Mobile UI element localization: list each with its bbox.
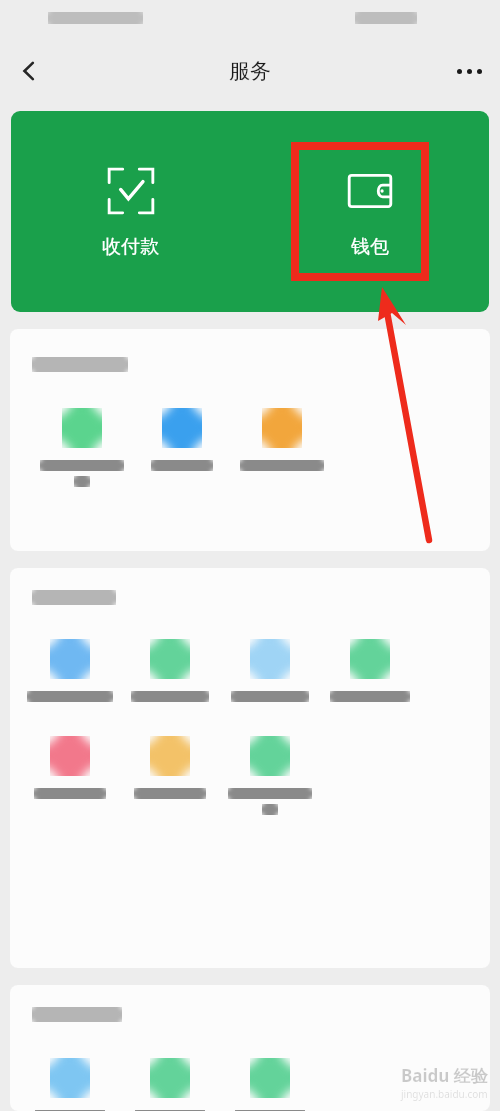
button[interactable]: Back xyxy=(6,48,52,94)
button[interactable] xyxy=(32,408,132,487)
button[interactable] xyxy=(20,1058,120,1111)
button[interactable] xyxy=(220,1058,320,1111)
button[interactable] xyxy=(320,639,420,702)
button[interactable] xyxy=(20,736,120,799)
button[interactable]: 收付款 xyxy=(11,111,250,312)
button[interactable] xyxy=(20,639,120,702)
button[interactable] xyxy=(220,639,320,702)
staticText: jingyan.baidu.com xyxy=(401,1087,488,1101)
button[interactable]: 钱包 xyxy=(250,111,489,312)
staticText: 收付款 xyxy=(102,235,159,259)
button[interactable] xyxy=(120,639,220,702)
button[interactable]: More options xyxy=(446,48,492,94)
staticText: 钱包 xyxy=(351,235,389,259)
staticText: Baidu 经验 xyxy=(401,1064,488,1087)
button[interactable] xyxy=(120,1058,220,1111)
button[interactable] xyxy=(220,736,320,815)
staticText: 服务 xyxy=(229,58,271,84)
button[interactable] xyxy=(132,408,232,471)
button[interactable] xyxy=(120,736,220,799)
button[interactable] xyxy=(232,408,332,471)
